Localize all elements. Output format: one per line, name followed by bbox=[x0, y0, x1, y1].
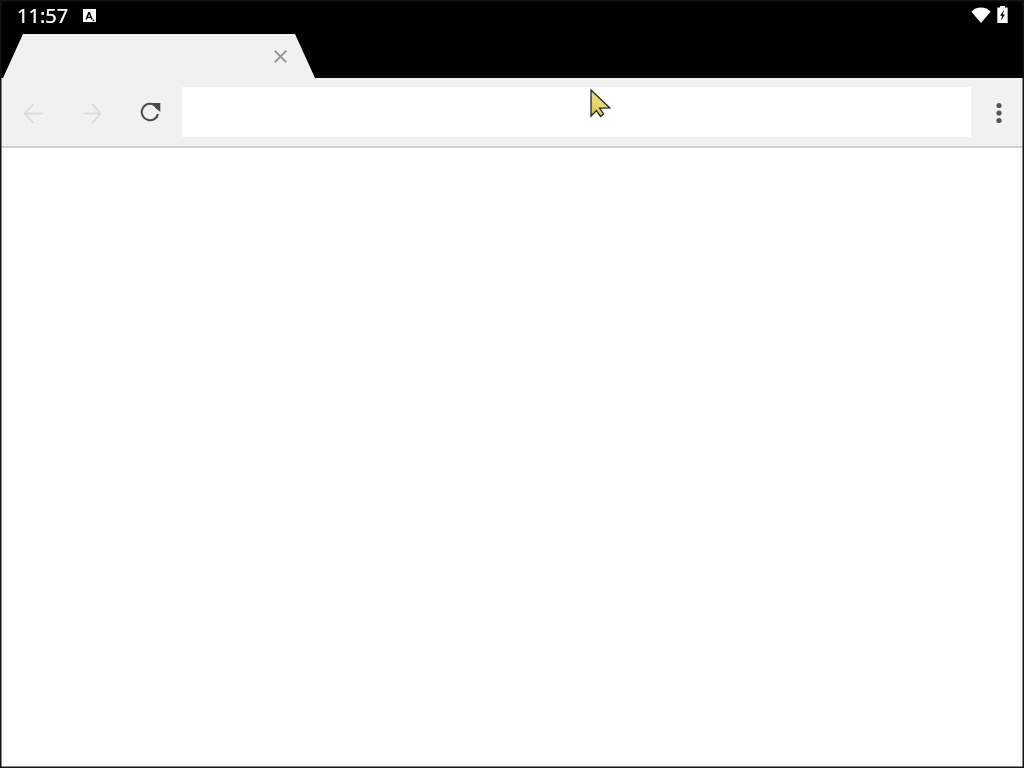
button[interactable]: New tab bbox=[3, 34, 315, 78]
staticText: 11:57 bbox=[17, 2, 69, 29]
button[interactable]: Back bbox=[12, 91, 56, 135]
button[interactable]: Reload bbox=[128, 90, 172, 134]
button[interactable]: More options bbox=[977, 91, 1021, 135]
button[interactable]: Close tab bbox=[264, 40, 296, 72]
button[interactable]: Search or type web address bbox=[182, 87, 971, 137]
button[interactable]: Forward bbox=[70, 91, 114, 135]
